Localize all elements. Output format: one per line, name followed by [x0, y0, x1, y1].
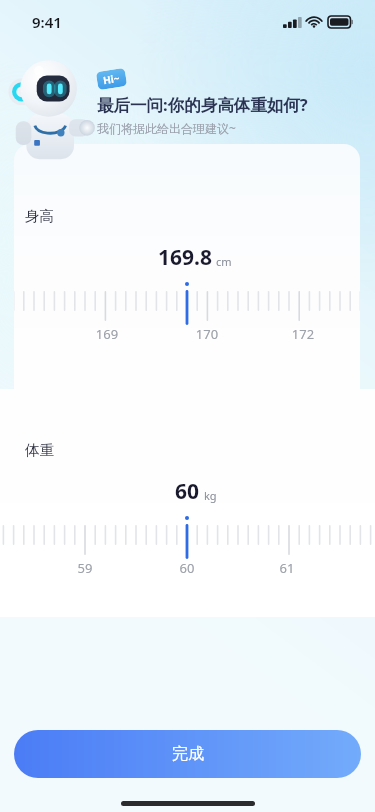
staticText: 完成	[172, 744, 204, 764]
staticText: 体重	[25, 441, 54, 459]
staticText: 172	[289, 325, 317, 343]
staticText: 170	[193, 325, 221, 343]
staticText: 最后一问:你的身高体重如何?	[97, 93, 308, 116]
staticText: 61	[273, 559, 301, 577]
button[interactable]: 完成	[14, 730, 361, 778]
staticText: 9:41	[32, 12, 62, 32]
staticText: 60	[175, 477, 200, 506]
staticText: cm	[216, 254, 232, 269]
staticText: Hi~	[102, 71, 121, 87]
staticText: 我们将据此给出合理建议~	[97, 120, 236, 136]
staticText: 169.8	[158, 243, 212, 272]
staticText: 169	[93, 325, 121, 343]
staticText: 59	[71, 559, 99, 577]
staticText: 身高	[25, 207, 54, 225]
staticText: 60	[173, 559, 201, 577]
staticText: kg	[204, 488, 217, 503]
